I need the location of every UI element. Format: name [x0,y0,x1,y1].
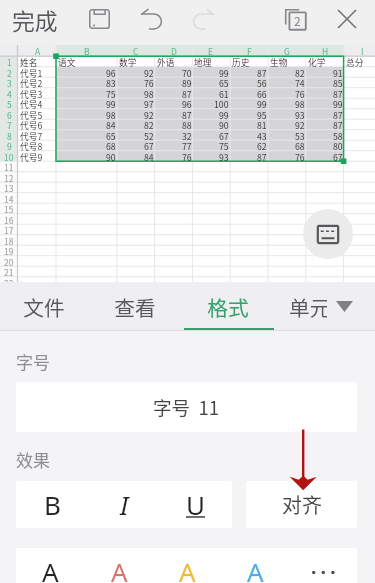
staticText: 89 [182,77,192,88]
staticText: 完成 [12,4,58,37]
staticText: 82 [295,67,305,78]
staticText: 96 [182,98,192,109]
button[interactable]: B [16,481,88,528]
staticText: 代号9 [20,151,43,162]
staticText: B [84,45,90,56]
staticText: 5 [7,98,12,109]
staticText: 85 [333,77,343,88]
staticText: 95 [257,109,267,120]
staticText: 代号6 [20,119,43,130]
staticText: 7 [7,119,12,130]
staticText: 生物 [270,56,288,67]
staticText: 65 [219,77,229,88]
staticText: U [186,487,206,522]
button[interactable]: A [221,548,289,583]
staticText: 1 [7,56,12,67]
button[interactable]: A [16,548,85,583]
staticText: 地理 [194,56,212,67]
staticText: 99 [333,98,343,109]
staticText: 87 [182,109,192,120]
staticText: 87 [182,88,192,99]
staticText: 92 [144,109,154,120]
staticText: 11 [4,161,14,172]
staticText: 76 [295,88,305,99]
button[interactable]: 字号 11 [16,382,357,432]
staticText: 语文 [58,56,76,67]
staticText: 32 [182,130,192,141]
staticText: 12 [4,172,14,183]
staticText: C [133,45,139,56]
staticText: 16 [4,214,14,225]
staticText: A [111,554,128,583]
staticText: 83 [106,77,116,88]
staticText: 10 [4,151,14,162]
staticText: 9 [7,140,12,151]
staticText: 76 [182,151,192,162]
staticText: 58 [333,130,343,141]
staticText: 化学 [308,56,326,67]
staticText: 53 [295,130,305,141]
button[interactable]: Undo [131,0,171,38]
staticText: 字号 11 [153,393,220,420]
button[interactable]: 单元格 [288,282,327,331]
staticText: 65 [106,130,116,141]
button[interactable]: A [85,548,153,583]
button[interactable]: Sheets [275,0,315,38]
staticText: 75 [106,88,116,99]
button[interactable]: More tabs [327,282,362,331]
staticText: 单元格 [289,292,327,322]
button[interactable]: U [160,481,232,528]
button[interactable]: I [88,481,160,528]
button[interactable]: Save [79,0,119,38]
staticText: A [42,554,59,583]
staticText: 字号 [16,349,50,374]
staticText: 87 [257,151,267,162]
staticText: A [247,554,264,583]
button[interactable]: 格式 [183,282,273,331]
staticText: 80 [333,140,343,151]
staticText: 98 [144,88,154,99]
staticText: 19 [4,245,14,256]
staticText: 87 [333,88,343,99]
staticText: 62 [257,140,267,151]
staticText: 3 [7,77,12,88]
staticText: 87 [333,119,343,130]
staticText: A [35,45,41,56]
button[interactable]: Redo [183,0,223,38]
staticText: 90 [219,119,229,130]
staticText: 84 [144,151,154,162]
button[interactable]: More colors [289,548,357,583]
button[interactable]: Close [327,0,367,38]
staticText: 代号1 [20,67,43,78]
button[interactable]: 完成 [6,0,64,45]
staticText: 92 [144,67,154,78]
staticText: 代号3 [20,88,43,99]
button[interactable]: A [153,548,221,583]
button[interactable]: 查看 [90,282,180,331]
button[interactable]: 对齐 [246,481,357,528]
staticText: 6 [7,109,12,120]
staticText: 67 [333,151,343,162]
staticText: 对齐 [282,490,322,519]
staticText: A [179,554,196,583]
staticText: 99 [219,109,229,120]
staticText: 数学 [119,56,137,67]
staticText: 文件 [23,292,65,322]
staticText: 93 [295,109,305,120]
staticText: 代号7 [20,130,43,141]
staticText: 81 [257,119,267,130]
staticText: 76 [144,77,154,88]
staticText: 43 [257,130,267,141]
staticText: 14 [4,193,14,204]
staticText: 97 [144,98,154,109]
staticText: 15 [4,203,14,214]
staticText: B [44,487,61,522]
button[interactable]: 文件 [0,282,89,331]
staticText: I [361,45,364,56]
button[interactable]: Edit cell [303,209,353,259]
staticText: 22 [4,277,14,288]
staticText: G [284,45,290,56]
staticText: 2 [294,12,301,29]
staticText: 68 [106,140,116,151]
staticText: 77 [182,140,192,151]
